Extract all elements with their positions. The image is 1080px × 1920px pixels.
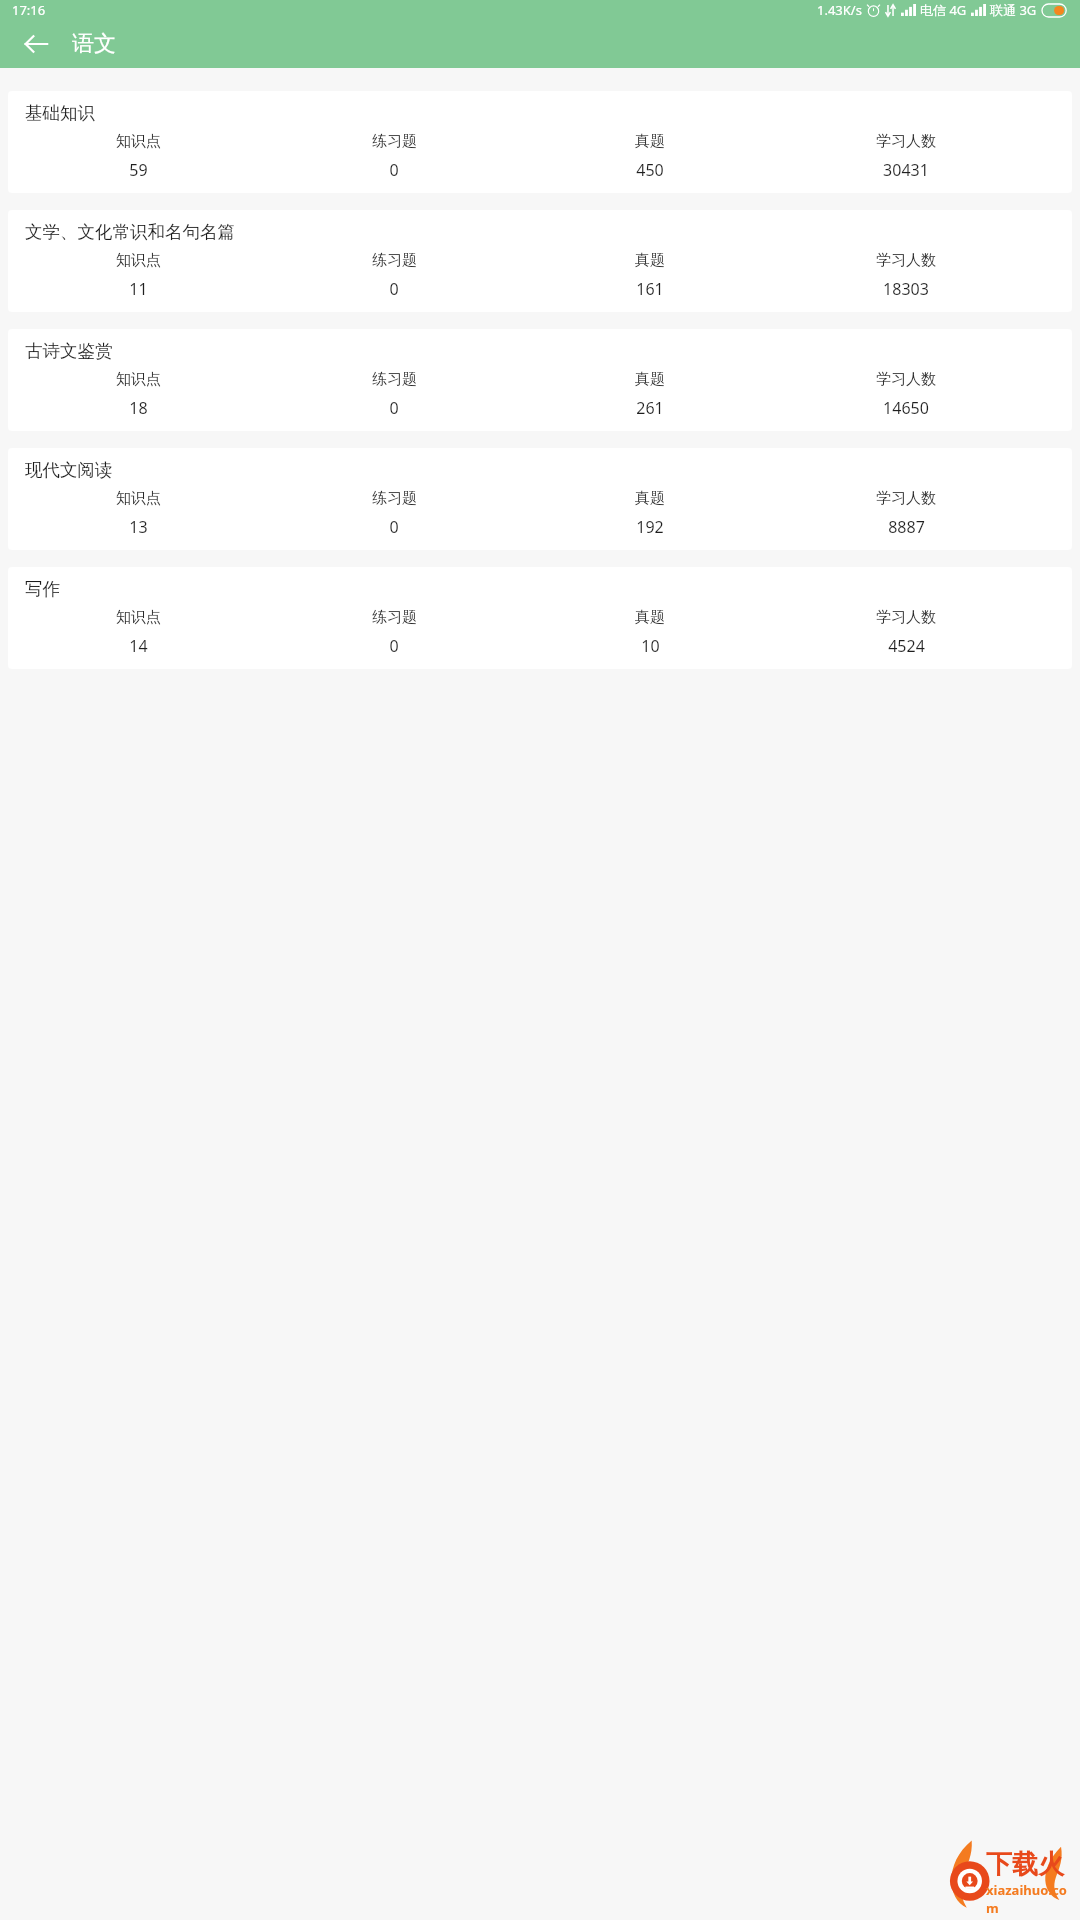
- staticText: 11: [129, 278, 148, 300]
- staticText: 10: [641, 635, 660, 657]
- staticText: 学习人数: [876, 251, 936, 270]
- staticText: 14: [129, 635, 148, 657]
- staticText: 0: [389, 397, 399, 419]
- staticText: 学习人数: [876, 132, 936, 151]
- staticText: 18303: [883, 278, 929, 300]
- staticText: 30431: [883, 159, 929, 181]
- staticText: 知识点: [116, 489, 161, 508]
- staticText: 知识点: [116, 251, 161, 270]
- staticText: 真题: [635, 251, 665, 270]
- staticText: 18: [129, 397, 148, 419]
- staticText: 电信 4G: [920, 1, 967, 19]
- staticText: 古诗文鉴赏: [25, 340, 113, 362]
- staticText: 学习人数: [876, 489, 936, 508]
- staticText: 语文: [72, 30, 116, 58]
- staticText: 0: [389, 635, 399, 657]
- staticText: 练习题: [372, 489, 417, 508]
- staticText: 知识点: [116, 370, 161, 389]
- staticText: 练习题: [372, 608, 417, 627]
- button[interactable]: 文学、文化常识和名句名篇: [8, 210, 1072, 312]
- staticText: 文学、文化常识和名句名篇: [25, 221, 235, 243]
- staticText: 261: [636, 397, 664, 419]
- staticText: 学习人数: [876, 370, 936, 389]
- staticText: 161: [636, 278, 664, 300]
- button[interactable]: Back: [12, 20, 60, 68]
- staticText: 现代文阅读: [25, 459, 113, 481]
- staticText: 真题: [635, 370, 665, 389]
- staticText: 192: [636, 516, 664, 538]
- staticText: 知识点: [116, 608, 161, 627]
- staticText: 联通 3G: [990, 1, 1037, 19]
- staticText: 0: [389, 159, 399, 181]
- staticText: 基础知识: [25, 102, 95, 124]
- staticText: 13: [129, 516, 148, 538]
- staticText: 1.43K/s: [817, 1, 862, 19]
- staticText: 知识点: [116, 132, 161, 151]
- button[interactable]: 写作: [8, 567, 1072, 669]
- staticText: 59: [129, 159, 148, 181]
- staticText: 真题: [635, 132, 665, 151]
- staticText: 下载火: [986, 1848, 1064, 1881]
- staticText: 写作: [25, 578, 60, 600]
- staticText: 14650: [883, 397, 929, 419]
- staticText: 真题: [635, 489, 665, 508]
- staticText: 4524: [888, 635, 925, 657]
- staticText: 8887: [888, 516, 925, 538]
- staticText: xiazaihuo.com: [986, 1881, 1070, 1914]
- staticText: 17:16: [12, 1, 46, 19]
- staticText: 学习人数: [876, 608, 936, 627]
- button[interactable]: 基础知识: [8, 91, 1072, 193]
- button[interactable]: 古诗文鉴赏: [8, 329, 1072, 431]
- staticText: 450: [636, 159, 664, 181]
- staticText: 练习题: [372, 370, 417, 389]
- button[interactable]: 现代文阅读: [8, 448, 1072, 550]
- staticText: 0: [389, 278, 399, 300]
- staticText: 真题: [635, 608, 665, 627]
- staticText: 练习题: [372, 251, 417, 270]
- staticText: 0: [389, 516, 399, 538]
- staticText: 练习题: [372, 132, 417, 151]
